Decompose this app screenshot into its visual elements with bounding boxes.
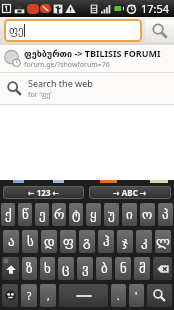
staticText: ქ [5,207,12,222]
staticText: ფე [9,24,24,37]
button[interactable]: წ [18,203,32,226]
button[interactable]: ი [122,203,137,226]
staticText: ვ [82,261,89,276]
staticText: ← 123 ← [28,187,60,198]
staticText: ' [135,289,138,303]
button[interactable]: → ABC → [89,186,171,199]
staticText: წ [22,207,29,222]
button[interactable]: გ [79,230,95,253]
button[interactable]: Backspace [153,257,172,280]
button[interactable]: ო [140,203,155,226]
button[interactable]: ზ [22,257,37,280]
button[interactable]: Search [147,284,172,307]
button[interactable]: Search the web [0,73,174,104]
staticText: ტ [72,207,81,222]
staticText: ყ [90,207,97,222]
button[interactable]: , [40,284,56,307]
staticText: რ [54,207,65,222]
staticText: , [47,289,50,303]
button[interactable]: კ [136,230,152,253]
staticText: ო [142,207,153,222]
button[interactable]: ე [35,203,49,226]
button[interactable]: ჯ [117,230,133,253]
staticText: პ [162,207,169,222]
button[interactable]: ? [21,284,37,307]
button[interactable]: . [111,284,126,307]
staticText: გ [83,234,91,249]
staticText: → ABC → [113,187,147,198]
button[interactable]: Space [59,284,108,307]
staticText: ხ [44,261,51,276]
button[interactable]: უ [104,203,119,226]
button[interactable]: Emoji [2,284,18,307]
button[interactable]: ქ [1,203,15,226]
staticText: ? [27,289,32,303]
button[interactable]: ტ [69,203,83,226]
staticText: ჰ [103,234,110,249]
button[interactable]: ← 123 ← [3,186,84,199]
button[interactable]: ყ [86,203,101,226]
staticText: დ [44,234,55,249]
staticText: ჯ [122,234,128,249]
button[interactable]: მ [134,257,150,280]
button[interactable]: ფეხბურთი -> TBILISIS FORUMI [0,45,174,72]
button[interactable]: ლ [155,230,171,253]
button[interactable]: Shift [2,257,19,280]
staticText: ფეხბურთი -> TBILISIS FORUMI [24,47,161,59]
button[interactable]: რ [52,203,66,226]
button[interactable]: ც [58,257,74,280]
button[interactable]: ' [129,284,144,307]
button[interactable]: პ [158,203,173,226]
staticText: ლ [156,234,170,249]
button[interactable]: ნ [115,257,131,280]
button[interactable]: ა [3,230,19,253]
staticText: ც [62,261,70,276]
staticText: მ [139,261,146,276]
staticText: ზ [26,261,33,276]
staticText: forum.ge/?showforum=76 [24,60,110,70]
button[interactable]: ბ [96,257,112,280]
staticText: ა [8,234,15,249]
staticText: უ [108,207,115,222]
staticText: კ [141,234,148,249]
staticText: ს [27,234,34,249]
button[interactable]: ფე [4,19,142,42]
button[interactable]: დ [41,230,57,253]
staticText: for 'ფე' [28,90,52,100]
button[interactable]: ს [22,230,38,253]
button[interactable]: ვ [77,257,93,280]
button[interactable]: ფ [60,230,76,253]
button[interactable]: ხ [40,257,55,280]
staticText: ნ [120,261,127,276]
staticText: ი [126,207,133,222]
staticText: . [117,289,120,303]
staticText: Search the web [28,77,93,89]
staticText: ბ [101,261,108,276]
button[interactable]: Search [145,19,174,42]
staticText: ე [39,207,46,222]
staticText: 17:54 [141,1,170,16]
staticText: ფ [63,234,74,249]
button[interactable]: ჰ [98,230,114,253]
